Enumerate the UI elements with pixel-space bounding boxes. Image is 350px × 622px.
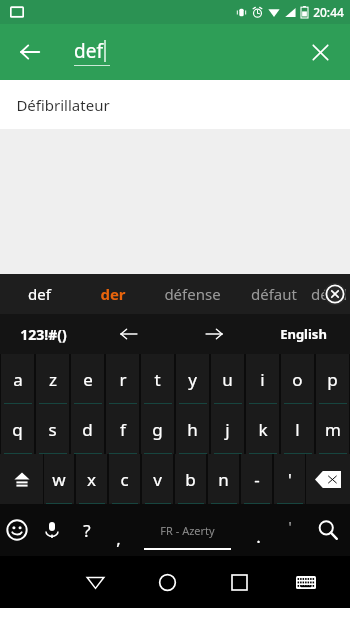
staticText: h [187, 418, 198, 441]
staticText: t [154, 368, 161, 391]
button[interactable]: z [36, 354, 69, 404]
staticText: FR - Azerty [160, 523, 215, 538]
staticText: ? [83, 519, 91, 542]
button[interactable]: ' [274, 454, 305, 504]
button[interactable]: défid [311, 274, 350, 314]
staticText: w [52, 468, 66, 491]
staticText: def [28, 284, 51, 304]
button[interactable]: k [246, 404, 279, 454]
button[interactable]: t [141, 354, 174, 404]
button[interactable]: h [176, 404, 209, 454]
staticText: v [153, 468, 162, 491]
button[interactable]: - [241, 454, 272, 504]
button[interactable]: d [71, 404, 104, 454]
button[interactable]: Expand suggestions [324, 283, 346, 305]
staticText: d [82, 418, 93, 441]
staticText: . [256, 525, 261, 548]
button[interactable]: Change keyboard [275, 556, 337, 608]
button[interactable]: g [141, 404, 174, 454]
staticText: English [280, 325, 327, 343]
staticText: 20:44 [313, 4, 344, 20]
staticText: 123!#() [20, 325, 67, 344]
button[interactable]: Search [305, 504, 350, 556]
button[interactable]: e [71, 354, 104, 404]
staticText: , [116, 527, 121, 550]
staticText: u [222, 368, 233, 391]
button[interactable]: 123!#() [0, 314, 86, 354]
button[interactable]: b [175, 454, 206, 504]
button[interactable]: Voice input [34, 504, 69, 556]
staticText: défaut [251, 284, 297, 304]
button[interactable]: m [316, 404, 349, 454]
button[interactable]: x [76, 454, 107, 504]
button[interactable]: Back [8, 30, 52, 74]
button[interactable]: Shift [0, 454, 43, 504]
button[interactable]: def [0, 274, 78, 314]
staticText: e [83, 368, 93, 391]
button[interactable]: défense [148, 274, 236, 314]
staticText: l [295, 418, 300, 441]
button[interactable]: der [78, 274, 148, 314]
staticText: y [188, 368, 197, 391]
button[interactable]: l [281, 404, 314, 454]
button[interactable]: c [109, 454, 140, 504]
staticText: der [100, 284, 126, 304]
staticText: def [74, 38, 103, 64]
staticText: o [292, 368, 303, 391]
staticText: i [260, 368, 265, 391]
staticText: r [119, 368, 127, 391]
button[interactable]: défaut [236, 274, 311, 314]
button[interactable]: a [1, 354, 34, 404]
button[interactable]: f [106, 404, 139, 454]
button[interactable]: j [211, 404, 244, 454]
button[interactable]: p [316, 354, 349, 404]
staticText: ' [288, 468, 292, 491]
button[interactable]: Move cursor left [86, 314, 171, 354]
staticText: - [254, 468, 260, 491]
button[interactable]: r [106, 354, 139, 404]
button[interactable]: i [246, 354, 279, 404]
button[interactable]: Défibrillateur [0, 80, 350, 129]
button[interactable]: Home [131, 556, 203, 608]
button[interactable]: . [243, 504, 274, 556]
staticText: g [152, 418, 163, 441]
staticText: b [185, 468, 196, 491]
button[interactable]: v [142, 454, 173, 504]
staticText: z [49, 368, 57, 391]
button[interactable]: Backspace [306, 454, 350, 504]
button[interactable]: Recents [203, 556, 275, 608]
staticText: m [325, 418, 341, 441]
button[interactable]: w [44, 454, 74, 504]
button[interactable]: u [211, 354, 244, 404]
button[interactable]: Move cursor right [171, 314, 256, 354]
button[interactable]: Clear [298, 30, 342, 74]
button[interactable]: Hide keyboard [59, 556, 131, 608]
staticText: ' [288, 517, 292, 536]
staticText: k [258, 418, 268, 441]
button[interactable]: , [104, 504, 132, 556]
button[interactable]: ' [274, 504, 305, 556]
staticText: f [120, 418, 126, 441]
button[interactable]: s [36, 404, 69, 454]
button[interactable]: o [281, 354, 314, 404]
button[interactable]: q [1, 404, 34, 454]
staticText: p [327, 368, 338, 391]
staticText: q [12, 418, 23, 441]
button[interactable]: Emoji [0, 504, 34, 556]
staticText: défid [311, 284, 347, 304]
staticText: j [225, 418, 230, 441]
staticText: a [13, 368, 23, 391]
staticText: c [120, 468, 129, 491]
staticText: x [87, 468, 96, 491]
staticText: Défibrillateur [16, 95, 110, 115]
staticText: n [218, 468, 229, 491]
staticText: défense [164, 284, 221, 304]
button[interactable]: English [256, 314, 350, 354]
button[interactable]: y [176, 354, 209, 404]
button[interactable]: ? [69, 504, 104, 556]
button[interactable]: n [208, 454, 239, 504]
staticText: s [48, 418, 57, 441]
button[interactable]: FR - Azerty [132, 504, 243, 556]
